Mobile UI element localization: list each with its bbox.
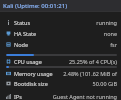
button[interactable]: CPU	[0, 54, 121, 66]
staticText: Status	[14, 19, 31, 26]
button[interactable]: Status	[0, 17, 121, 28]
staticText: Guest Agent not running	[26, 93, 117, 100]
staticText: Kali (Uptime: 00:01:21)	[3, 2, 68, 10]
other: Memory	[6, 71, 11, 76]
staticText: 50.00 GiB	[52, 80, 117, 87]
staticText: running	[35, 19, 117, 26]
staticText: Node	[14, 41, 28, 48]
other: Node	[6, 42, 11, 47]
other: Disk	[6, 81, 11, 86]
button[interactable]: Kali (Uptime: 00:01:21)	[0, 0, 121, 11]
staticText: CPU usage	[14, 58, 42, 65]
staticText: Bootdisk size	[14, 80, 48, 87]
other: Status	[6, 20, 11, 25]
staticText: none	[41, 30, 117, 37]
staticText: Memory usage	[14, 70, 53, 77]
button[interactable]: Memory	[0, 66, 121, 78]
other: CPU	[6, 59, 11, 64]
staticText: 25.25% of 4 CPU(s)	[45, 58, 117, 65]
staticText: fsr	[32, 41, 117, 48]
staticText: 2.48% (101.62 MiB of 4.00 GiB)	[56, 70, 117, 77]
button[interactable]: HA State	[0, 28, 121, 39]
button[interactable]: Disk	[0, 78, 121, 89]
other: HA State	[6, 31, 11, 36]
button[interactable]: Network	[0, 93, 121, 100]
staticText: IPs	[14, 93, 22, 100]
other: Network	[6, 94, 11, 99]
button[interactable]: Node	[0, 39, 121, 50]
staticText: HA State	[14, 30, 37, 37]
